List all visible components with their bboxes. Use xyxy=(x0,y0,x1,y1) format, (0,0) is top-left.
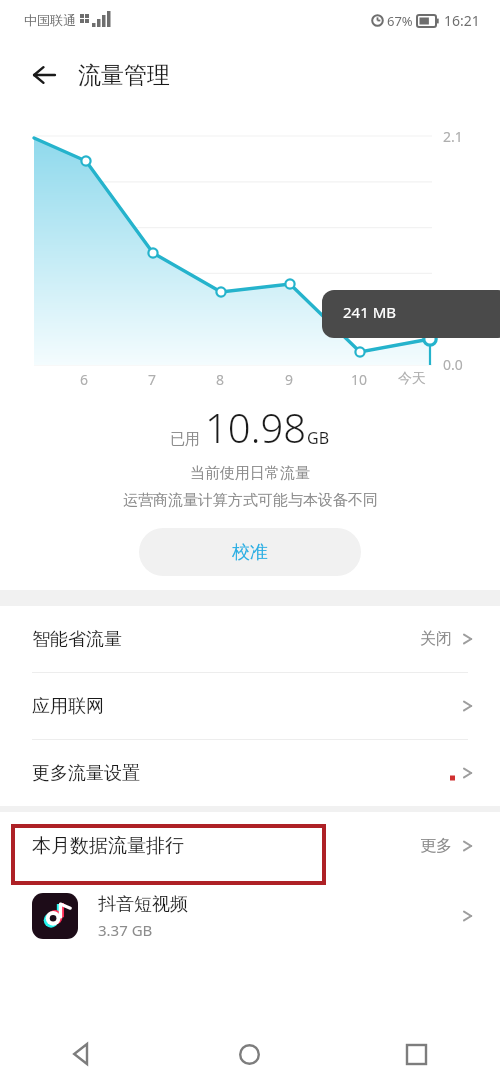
staticText: 6 xyxy=(80,370,89,389)
staticText: 10 xyxy=(351,370,368,389)
staticText: 应用联网 xyxy=(32,695,104,718)
staticText: 关闭 xyxy=(420,629,452,649)
button[interactable]: Recents xyxy=(333,1025,500,1083)
staticText: 0.0 xyxy=(443,355,463,374)
staticText: 流量管理 xyxy=(78,61,170,90)
button[interactable]: Back xyxy=(0,1025,166,1083)
button[interactable]: Home xyxy=(166,1025,333,1083)
staticText: 校准 xyxy=(232,541,268,564)
staticText: 智能省流量 xyxy=(32,628,122,651)
staticText: 7 xyxy=(148,370,157,389)
staticText: 更多 xyxy=(420,836,452,856)
button[interactable]: 应用联网 xyxy=(0,673,500,739)
button[interactable]: 抖音短视频 xyxy=(0,880,500,952)
staticText: 本月数据流量排行 xyxy=(32,834,184,858)
staticText: 9 xyxy=(285,370,294,389)
staticText: 3.37 GB xyxy=(98,920,153,940)
staticText: 中国联通 xyxy=(24,12,76,28)
staticText: 10.98 xyxy=(205,400,307,454)
staticText: GB xyxy=(307,427,330,449)
staticText: 8 xyxy=(216,370,225,389)
button[interactable]: 智能省流量 xyxy=(0,606,500,672)
staticText: 已用 xyxy=(170,430,200,449)
staticText: 当前使用日常流量 xyxy=(190,464,310,483)
staticText: 抖音短视频 xyxy=(98,893,188,916)
staticText: 2.1 xyxy=(443,127,463,146)
button[interactable]: 更多流量设置 xyxy=(0,740,500,806)
button[interactable]: 校准 xyxy=(139,528,361,576)
staticText: 运营商流量计算方式可能与本设备不同 xyxy=(123,491,378,510)
button[interactable]: 本月数据流量排行 xyxy=(0,812,500,880)
staticText: 241 MB xyxy=(343,302,396,322)
staticText: 今天 xyxy=(398,370,426,388)
staticText: 更多流量设置 xyxy=(32,762,140,785)
button[interactable]: Back xyxy=(24,55,64,95)
staticText: 67% xyxy=(387,12,413,30)
staticText: 16:21 xyxy=(444,11,480,30)
